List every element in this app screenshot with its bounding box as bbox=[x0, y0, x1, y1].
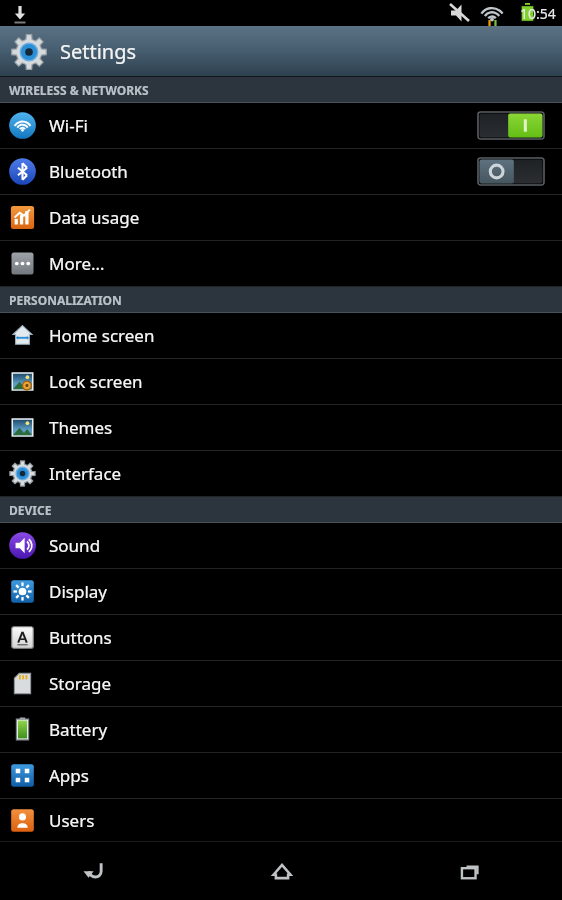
button[interactable]: Apps bbox=[0, 753, 562, 798]
staticText: Apps bbox=[49, 764, 89, 787]
button[interactable]: Storage bbox=[0, 661, 562, 706]
staticText: More… bbox=[49, 252, 105, 275]
button[interactable]: Bluetooth bbox=[0, 149, 562, 194]
staticText: 10:54 bbox=[520, 4, 556, 23]
staticText: DEVICE bbox=[9, 502, 52, 518]
staticText: Sound bbox=[49, 534, 101, 557]
button[interactable]: Interface bbox=[0, 451, 562, 496]
staticText: PERSONALIZATION bbox=[9, 292, 122, 308]
button[interactable]: Recent apps bbox=[375, 841, 562, 900]
button[interactable]: Back bbox=[0, 841, 188, 900]
staticText: Data usage bbox=[49, 206, 140, 229]
button[interactable]: Home bbox=[188, 841, 375, 900]
button[interactable]: Home screen bbox=[0, 313, 562, 358]
button[interactable]: Sound bbox=[0, 523, 562, 568]
staticText: Home screen bbox=[49, 324, 155, 347]
button[interactable]: Settings bbox=[0, 26, 562, 77]
button[interactable]: Battery bbox=[0, 707, 562, 752]
staticText: Storage bbox=[49, 672, 112, 695]
button[interactable]: Users bbox=[0, 799, 562, 841]
button[interactable]: Lock screen bbox=[0, 359, 562, 404]
staticText: Settings bbox=[60, 38, 137, 65]
button[interactable]: Data usage bbox=[0, 195, 562, 240]
staticText: Bluetooth bbox=[49, 160, 128, 183]
staticText: Display bbox=[49, 580, 107, 603]
staticText: Interface bbox=[49, 462, 122, 485]
staticText: Themes bbox=[49, 416, 113, 439]
button[interactable]: Buttons bbox=[0, 615, 562, 660]
button[interactable]: More… bbox=[0, 241, 562, 286]
staticText: Users bbox=[49, 809, 95, 832]
button[interactable]: Wi-Fi bbox=[0, 103, 562, 148]
button[interactable]: Display bbox=[0, 569, 562, 614]
button[interactable]: Themes bbox=[0, 405, 562, 450]
staticText: Lock screen bbox=[49, 370, 143, 393]
staticText: Battery bbox=[49, 718, 108, 741]
staticText: Buttons bbox=[49, 626, 112, 649]
staticText: WIRELESS & NETWORKS bbox=[9, 82, 149, 98]
staticText: Wi-Fi bbox=[49, 114, 88, 137]
